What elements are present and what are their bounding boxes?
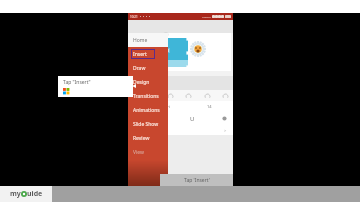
staticText: Design xyxy=(133,79,150,86)
staticText: Draw xyxy=(133,65,146,72)
button[interactable]: Text color xyxy=(220,114,229,123)
button[interactable]: View xyxy=(128,145,168,159)
button[interactable]: my xyxy=(0,186,52,202)
staticText: uide xyxy=(27,189,43,199)
button[interactable]: Tap "Insert" xyxy=(58,76,133,97)
button[interactable] xyxy=(128,159,168,173)
staticText: 4.00K/s xyxy=(202,15,211,18)
button[interactable]: Undo xyxy=(184,92,192,100)
staticText: 14 xyxy=(207,104,212,109)
button[interactable]: Review xyxy=(128,131,168,145)
button[interactable]: Animations xyxy=(128,103,168,117)
button[interactable] xyxy=(130,38,188,63)
staticText: Slide Show xyxy=(133,121,159,128)
button[interactable]: Insert xyxy=(128,47,168,61)
staticText: Animations xyxy=(133,107,160,114)
staticText: Tap "Insert" xyxy=(63,79,91,86)
staticText: Review xyxy=(133,135,150,142)
button[interactable]: Redo xyxy=(203,92,211,100)
button[interactable]: U xyxy=(188,114,197,123)
button[interactable]: More xyxy=(221,92,229,100)
staticText: my xyxy=(10,189,21,199)
staticText: Calibri xyxy=(158,104,170,109)
button[interactable]: Design xyxy=(128,75,168,89)
button[interactable]: Slide Show xyxy=(128,117,168,131)
button[interactable]: Home xyxy=(128,33,168,47)
staticText: Tap 'Insert' xyxy=(184,177,210,184)
button[interactable]: Format xyxy=(166,92,174,100)
button[interactable]: Draw xyxy=(128,61,168,75)
staticText: > xyxy=(224,128,227,133)
button[interactable]: Transitions xyxy=(128,89,168,103)
staticText: Transitions xyxy=(133,93,159,100)
staticText: Insert xyxy=(133,51,147,58)
staticText: U xyxy=(190,115,195,123)
staticText: 10:21 xyxy=(130,15,138,19)
staticText: Home xyxy=(133,37,148,44)
staticText: View xyxy=(133,149,144,156)
